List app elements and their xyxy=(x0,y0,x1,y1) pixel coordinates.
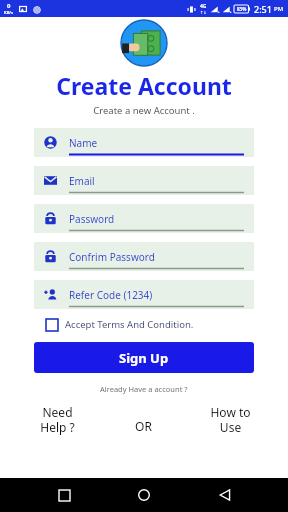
staticText: ↑↓ xyxy=(200,10,207,15)
button[interactable]: OR xyxy=(100,404,187,434)
button[interactable]: Back xyxy=(208,478,242,512)
staticText: Need Help ? xyxy=(40,404,75,435)
button[interactable]: Confrim Password xyxy=(34,242,254,271)
staticText: KB/s xyxy=(4,10,13,15)
button[interactable]: Need Help ? xyxy=(14,404,100,435)
staticText: 0 xyxy=(7,2,11,10)
button[interactable]: Recent apps xyxy=(47,478,81,512)
button[interactable]: Refer Code (1234) xyxy=(34,280,254,309)
button[interactable]: Already Have a account ? xyxy=(100,384,188,394)
staticText: Email xyxy=(69,174,247,188)
staticText: Sign Up xyxy=(119,349,169,367)
staticText: 83% xyxy=(237,6,247,12)
staticText: Create Account xyxy=(56,70,232,101)
button[interactable]: Home xyxy=(127,478,161,512)
button[interactable]: Sign Up xyxy=(34,342,254,373)
staticText: Refer Code (1234) xyxy=(69,288,247,302)
staticText: Accept Terms And Condition. xyxy=(65,318,194,331)
staticText: 4G xyxy=(200,3,207,10)
button[interactable]: How to Use xyxy=(187,404,274,435)
staticText: How to Use xyxy=(210,404,251,435)
button[interactable]: Password xyxy=(34,204,254,233)
staticText: Confrim Password xyxy=(69,250,247,264)
staticText: Create a new Account . xyxy=(93,104,195,117)
button[interactable]: Name xyxy=(34,128,254,157)
button[interactable]: Email xyxy=(34,166,254,195)
button[interactable]: Accept Terms And Condition. xyxy=(46,318,268,331)
staticText: Password xyxy=(69,212,247,226)
staticText: OR xyxy=(135,418,152,434)
staticText: PM xyxy=(274,5,284,13)
staticText: 2:51 xyxy=(254,3,272,15)
staticText: Name xyxy=(69,136,247,150)
